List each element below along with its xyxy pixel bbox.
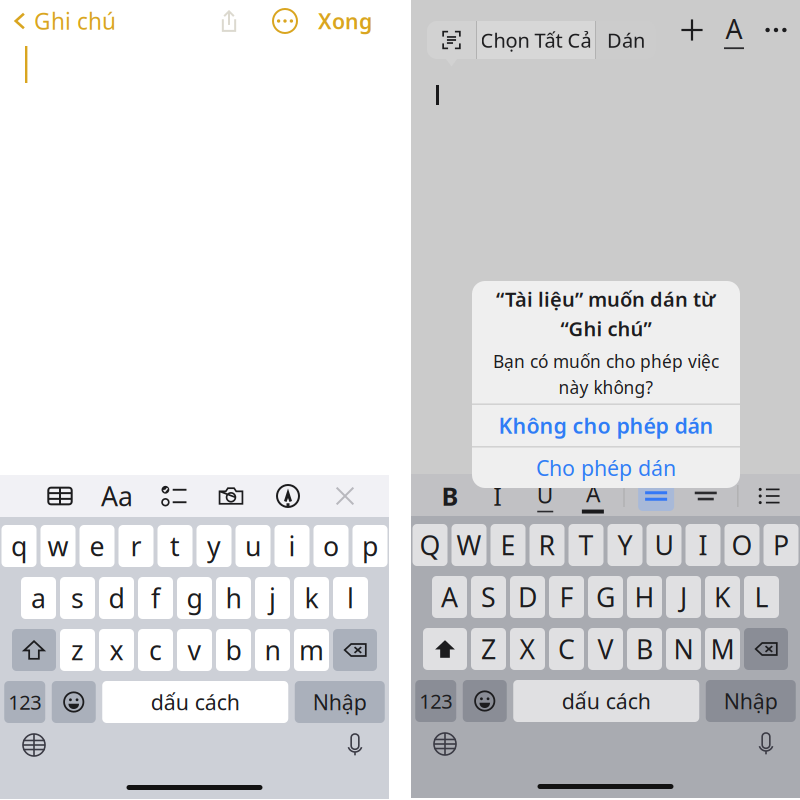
button[interactable]: f [138, 577, 173, 619]
button[interactable]: o [313, 525, 348, 567]
button[interactable]: L [744, 576, 779, 618]
button[interactable]: Ghi chú [0, 6, 116, 36]
staticText: G [596, 579, 615, 615]
button[interactable]: J [666, 576, 701, 618]
button[interactable]: V [588, 628, 623, 670]
button[interactable]: Format [712, 11, 756, 49]
button[interactable]: p [352, 525, 387, 567]
button[interactable]: k [294, 577, 329, 619]
button[interactable]: A [432, 576, 467, 618]
button[interactable]: v [177, 629, 212, 671]
button[interactable]: a [21, 577, 56, 619]
button[interactable]: Close [326, 477, 364, 515]
button[interactable]: i [274, 525, 309, 567]
button[interactable]: j [255, 577, 290, 619]
button[interactable]: O [724, 524, 759, 566]
button[interactable]: E [490, 524, 525, 566]
button[interactable]: g [177, 577, 212, 619]
button[interactable]: 123 [415, 680, 456, 722]
button[interactable]: B [627, 628, 662, 670]
button[interactable]: Z [471, 628, 506, 670]
button[interactable]: More [756, 11, 796, 49]
button[interactable]: e [79, 525, 114, 567]
button[interactable]: G [588, 576, 623, 618]
button[interactable]: K [705, 576, 740, 618]
button[interactable]: Table [41, 477, 79, 515]
button[interactable]: Dán [596, 21, 656, 59]
button[interactable]: Xong [318, 4, 372, 38]
button[interactable]: 123 [4, 681, 45, 723]
button[interactable]: z [60, 629, 95, 671]
button[interactable]: Camera [212, 477, 250, 515]
button[interactable]: X [510, 628, 545, 670]
button[interactable]: Delete [333, 629, 377, 671]
staticText: V [597, 631, 613, 667]
button[interactable]: Highlight [576, 479, 610, 513]
button[interactable]: Emoji [463, 680, 507, 722]
button[interactable]: P [763, 524, 798, 566]
button[interactable]: y [196, 525, 231, 567]
button[interactable]: Change keyboard [411, 732, 457, 756]
button[interactable]: d [99, 577, 134, 619]
button[interactable]: Checklist [155, 477, 193, 515]
button[interactable]: Underline [528, 479, 562, 513]
button[interactable]: q [1, 525, 36, 567]
button[interactable]: Không cho phép dán [472, 404, 740, 446]
button[interactable]: Share [214, 4, 244, 38]
button[interactable]: x [99, 629, 134, 671]
button[interactable]: More [272, 6, 298, 36]
button[interactable]: h [216, 577, 251, 619]
button[interactable]: C [549, 628, 584, 670]
button[interactable]: Markup [269, 477, 307, 515]
button[interactable]: dấu cách [513, 680, 699, 722]
button[interactable]: Change keyboard [0, 733, 46, 757]
button[interactable]: Chọn Tất Cả [477, 21, 595, 59]
button[interactable]: s [60, 577, 95, 619]
button[interactable]: List [752, 479, 786, 513]
button[interactable]: Align [688, 481, 724, 511]
button[interactable]: Align left [638, 481, 674, 511]
staticText: 123 [419, 688, 452, 714]
button[interactable]: t [157, 525, 192, 567]
button[interactable]: Text format [98, 477, 136, 515]
button[interactable]: T [568, 524, 603, 566]
button[interactable]: Shift [423, 628, 467, 670]
button[interactable]: u [235, 525, 270, 567]
button[interactable]: Nhập [706, 680, 796, 722]
button[interactable]: Scan text [427, 21, 476, 59]
button[interactable]: Dictate [343, 733, 389, 757]
button[interactable]: H [627, 576, 662, 618]
button[interactable]: r [118, 525, 153, 567]
button[interactable]: N [666, 628, 701, 670]
staticText: “Ghi chú” [560, 315, 651, 342]
button[interactable]: I [685, 524, 720, 566]
button[interactable]: Emoji [52, 681, 96, 723]
button[interactable]: Y [607, 524, 642, 566]
button[interactable]: F [549, 576, 584, 618]
button[interactable]: R [529, 524, 564, 566]
button[interactable]: D [510, 576, 545, 618]
button[interactable]: Bold [433, 479, 467, 513]
button[interactable]: U [646, 524, 681, 566]
button[interactable]: c [138, 629, 173, 671]
button[interactable]: b [216, 629, 251, 671]
button[interactable]: Cho phép dán [472, 447, 740, 488]
button[interactable]: Add [672, 11, 712, 49]
button[interactable]: w [40, 525, 75, 567]
button[interactable]: Delete [744, 628, 788, 670]
button[interactable]: W [451, 524, 486, 566]
button[interactable]: Italic [481, 479, 515, 513]
button[interactable]: m [294, 629, 329, 671]
staticText: t [170, 528, 180, 564]
button[interactable]: dấu cách [102, 681, 288, 723]
button[interactable]: Nhập [295, 681, 385, 723]
button[interactable]: M [705, 628, 740, 670]
staticText: s [71, 580, 84, 616]
button[interactable]: Dictate [754, 732, 800, 756]
staticText: Dán [607, 27, 645, 53]
button[interactable]: n [255, 629, 290, 671]
button[interactable]: S [471, 576, 506, 618]
button[interactable]: Shift [12, 629, 56, 671]
button[interactable]: Q [412, 524, 447, 566]
button[interactable]: l [333, 577, 368, 619]
